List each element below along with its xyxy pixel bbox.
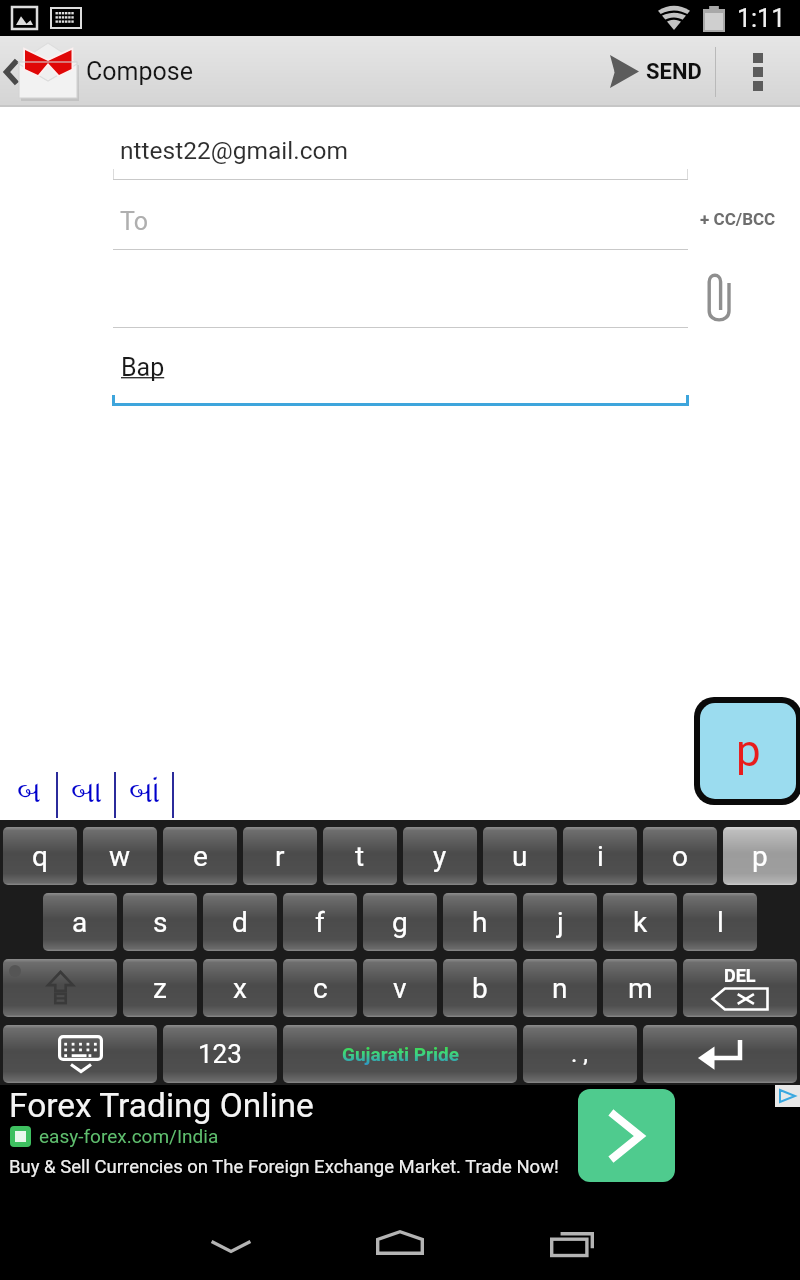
button[interactable]: f <box>283 893 357 951</box>
button[interactable]: d <box>203 893 277 951</box>
staticText: n <box>552 972 568 1005</box>
staticText: Forex Trading Online <box>9 1086 314 1125</box>
button[interactable]: બ <box>0 765 58 820</box>
staticText: બા <box>71 778 103 808</box>
button[interactable]: z <box>123 959 197 1017</box>
button[interactable] <box>3 1025 157 1083</box>
staticText: બાં <box>129 778 161 808</box>
staticText: p <box>736 725 761 777</box>
button[interactable]: Gujarati Pride <box>283 1025 517 1083</box>
staticText: j <box>557 906 564 939</box>
staticText: s <box>153 906 168 939</box>
staticText: Compose <box>86 57 193 86</box>
staticText: k <box>633 906 648 939</box>
staticText: c <box>313 972 328 1005</box>
staticText: 1:11 <box>737 4 786 33</box>
staticText: i <box>597 840 604 873</box>
staticText: a <box>72 906 88 939</box>
staticText: + CC/BCC <box>700 209 776 229</box>
staticText: v <box>393 972 407 1005</box>
staticText: 123 <box>198 1039 242 1069</box>
staticText: . , <box>571 1040 589 1068</box>
button[interactable]: t <box>323 827 397 885</box>
button[interactable]: Home <box>358 1212 442 1272</box>
button[interactable]: v <box>363 959 437 1017</box>
staticText: Bap <box>121 353 165 382</box>
staticText: બ <box>17 778 42 808</box>
button[interactable]: s <box>123 893 197 951</box>
button[interactable]: m <box>603 959 677 1017</box>
button[interactable]: Open advertisement <box>578 1089 675 1182</box>
staticText: nttest22@gmail.com <box>120 136 348 165</box>
button[interactable]: c <box>283 959 357 1017</box>
button[interactable]: SEND <box>570 36 715 107</box>
staticText: u <box>512 840 528 873</box>
button[interactable]: 123 <box>163 1025 277 1083</box>
staticText: easy-forex.com/India <box>39 1125 219 1147</box>
button[interactable]: o <box>643 827 717 885</box>
button[interactable] <box>3 959 117 1017</box>
staticText: o <box>672 840 688 873</box>
staticText: z <box>153 972 167 1005</box>
button[interactable]: i <box>563 827 637 885</box>
button[interactable]: Back <box>189 1216 273 1276</box>
button[interactable]: બા <box>58 765 116 820</box>
button[interactable]: k <box>603 893 677 951</box>
staticText: h <box>472 906 488 939</box>
button[interactable]: More options <box>716 36 800 107</box>
button[interactable]: r <box>243 827 317 885</box>
staticText: Buy & Sell Currencies on The Foreign Exc… <box>9 1156 559 1178</box>
staticText: m <box>628 972 653 1005</box>
staticText: p <box>752 840 768 873</box>
staticText: y <box>433 840 447 873</box>
button[interactable] <box>643 1025 797 1083</box>
button[interactable]: + CC/BCC <box>686 197 790 241</box>
button[interactable]: a <box>43 893 117 951</box>
button[interactable]: h <box>443 893 517 951</box>
button[interactable]: Navigate up <box>0 36 82 107</box>
button[interactable]: w <box>83 827 157 885</box>
button[interactable]: Attach file <box>692 269 748 327</box>
staticText: d <box>232 906 248 939</box>
button[interactable]: Recent apps <box>530 1214 614 1274</box>
button[interactable]: u <box>483 827 557 885</box>
staticText: Gujarati Pride <box>342 1043 459 1065</box>
staticText: g <box>392 906 408 939</box>
staticText: r <box>275 840 285 873</box>
button[interactable]: q <box>3 827 77 885</box>
button[interactable]: x <box>203 959 277 1017</box>
staticText: To <box>120 207 148 236</box>
button[interactable]: બાં <box>116 765 174 820</box>
staticText: b <box>472 972 488 1005</box>
button[interactable]: p <box>723 827 797 885</box>
staticText: w <box>109 840 131 873</box>
staticText: SEND <box>646 59 702 85</box>
button[interactable]: l <box>683 893 757 951</box>
button[interactable]: g <box>363 893 437 951</box>
button[interactable]: e <box>163 827 237 885</box>
button[interactable]: y <box>403 827 477 885</box>
button[interactable]: n <box>523 959 597 1017</box>
staticText: l <box>717 906 724 939</box>
button[interactable]: . , <box>523 1025 637 1083</box>
staticText: x <box>233 972 247 1005</box>
staticText: f <box>315 906 325 939</box>
button[interactable]: j <box>523 893 597 951</box>
button[interactable]: b <box>443 959 517 1017</box>
button[interactable]: DEL <box>683 959 797 1017</box>
staticText: t <box>355 840 365 873</box>
staticText: q <box>32 840 48 873</box>
staticText: e <box>193 840 208 873</box>
staticText: DEL <box>724 965 756 986</box>
